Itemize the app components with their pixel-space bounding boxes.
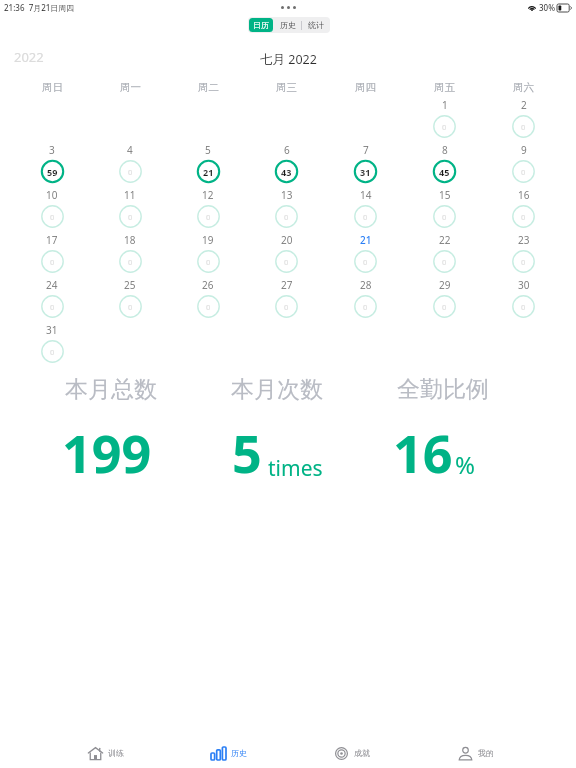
button[interactable]: 0 xyxy=(41,250,64,273)
button[interactable]: 59 xyxy=(41,160,64,183)
staticText: 周二 xyxy=(198,81,219,94)
staticText: 历史 xyxy=(231,748,247,758)
button[interactable]: 45 xyxy=(433,160,456,183)
staticText: times xyxy=(268,454,323,483)
staticText: 日历 xyxy=(253,20,269,30)
button[interactable]: 21 xyxy=(197,160,220,183)
button[interactable]: 我的 xyxy=(414,738,538,768)
button[interactable]: 0 xyxy=(512,205,535,228)
staticText: 0 xyxy=(128,212,133,222)
button[interactable]: 0 xyxy=(119,250,142,273)
staticText: 20 xyxy=(281,233,293,247)
button[interactable]: 0 xyxy=(512,115,535,138)
button[interactable]: 0 xyxy=(119,295,142,318)
staticText: 21:36 7月21日周四 xyxy=(4,2,75,13)
staticText: 5 xyxy=(205,143,211,157)
staticText: 0 xyxy=(521,122,526,132)
button[interactable]: 0 xyxy=(41,295,64,318)
button[interactable]: 0 xyxy=(197,250,220,273)
staticText: 16 xyxy=(518,188,530,202)
staticText: 1 xyxy=(442,98,448,112)
staticText: 0 xyxy=(50,257,55,267)
button[interactable]: 统计 xyxy=(302,17,330,33)
staticText: 15 xyxy=(439,188,451,202)
other: 历史 xyxy=(211,747,226,760)
staticText: 199 xyxy=(62,417,152,488)
staticText: 训练 xyxy=(108,748,124,758)
button[interactable]: 日历 xyxy=(249,18,273,32)
button[interactable]: 0 xyxy=(275,295,298,318)
other: 训练 xyxy=(88,747,103,760)
staticText: 周三 xyxy=(276,81,297,94)
button[interactable]: 0 xyxy=(433,250,456,273)
button[interactable]: 0 xyxy=(512,250,535,273)
button[interactable]: 训练 xyxy=(44,738,167,768)
button[interactable]: 成就 xyxy=(290,738,414,768)
staticText: 59 xyxy=(47,166,58,178)
staticText: 周六 xyxy=(513,81,534,94)
staticText: % xyxy=(455,448,475,481)
staticText: 18 xyxy=(124,233,136,247)
staticText: 全勤比例 xyxy=(397,375,489,404)
button[interactable]: 0 xyxy=(354,295,377,318)
staticText: 21 xyxy=(360,233,372,247)
button[interactable]: 0 xyxy=(41,205,64,228)
staticText: 22 xyxy=(439,233,451,247)
staticText: 43 xyxy=(281,166,292,178)
staticText: 10 xyxy=(46,188,58,202)
staticText: 0 xyxy=(128,257,133,267)
staticText: 0 xyxy=(363,257,368,267)
staticText: 2 xyxy=(521,98,527,112)
staticText: 12 xyxy=(202,188,214,202)
button[interactable]: 0 xyxy=(433,205,456,228)
staticText: 16 xyxy=(393,417,453,488)
staticText: 29 xyxy=(439,278,451,292)
staticText: 25 xyxy=(124,278,136,292)
staticText: 0 xyxy=(284,212,289,222)
staticText: 0 xyxy=(128,302,133,312)
button[interactable]: 31 xyxy=(354,160,377,183)
staticText: 27 xyxy=(281,278,293,292)
button[interactable]: 0 xyxy=(197,295,220,318)
staticText: 周一 xyxy=(120,81,141,94)
staticText: 七月 2022 xyxy=(260,51,317,68)
staticText: 17 xyxy=(46,233,58,247)
button[interactable]: 0 xyxy=(119,160,142,183)
staticText: 0 xyxy=(442,122,447,132)
button[interactable]: 43 xyxy=(275,160,298,183)
staticText: 0 xyxy=(284,257,289,267)
staticText: 19 xyxy=(202,233,214,247)
staticText: 9 xyxy=(521,143,527,157)
button[interactable]: 0 xyxy=(354,205,377,228)
button[interactable]: 0 xyxy=(433,115,456,138)
staticText: 周四 xyxy=(355,81,376,94)
staticText: 23 xyxy=(518,233,530,247)
staticText: 成就 xyxy=(354,748,370,758)
staticText: 30% xyxy=(539,2,555,13)
staticText: 0 xyxy=(521,257,526,267)
staticText: 45 xyxy=(439,166,450,178)
other: 我的 xyxy=(458,747,473,760)
staticText: 31 xyxy=(360,166,371,178)
button[interactable]: 0 xyxy=(354,250,377,273)
staticText: 0 xyxy=(521,167,526,177)
button[interactable]: 历史 xyxy=(167,738,290,768)
staticText: 0 xyxy=(50,212,55,222)
staticText: 0 xyxy=(442,302,447,312)
staticText: 14 xyxy=(360,188,372,202)
button[interactable]: 0 xyxy=(119,205,142,228)
button[interactable]: 0 xyxy=(275,205,298,228)
staticText: 7 xyxy=(363,143,369,157)
staticText: 0 xyxy=(50,302,55,312)
button[interactable]: 0 xyxy=(275,250,298,273)
button[interactable]: 历史 xyxy=(274,17,301,33)
button[interactable]: 0 xyxy=(512,160,535,183)
button[interactable]: 0 xyxy=(512,295,535,318)
staticText: 历史 xyxy=(280,20,296,30)
staticText: 0 xyxy=(128,167,133,177)
staticText: 0 xyxy=(521,302,526,312)
button[interactable]: 0 xyxy=(433,295,456,318)
button[interactable]: 0 xyxy=(197,205,220,228)
button[interactable]: 0 xyxy=(41,340,64,363)
staticText: 24 xyxy=(46,278,58,292)
